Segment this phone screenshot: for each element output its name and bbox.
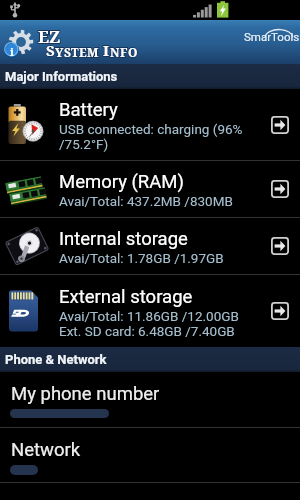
staticText: Phone & Network xyxy=(5,352,107,367)
button[interactable]: My phone number xyxy=(0,372,300,427)
staticText: EZ xyxy=(38,25,61,48)
button[interactable]: External storage xyxy=(0,275,300,347)
staticText: S xyxy=(46,40,55,60)
staticText: Internal storage xyxy=(59,228,188,250)
button[interactable]: Network xyxy=(0,428,300,482)
button[interactable]: Battery xyxy=(0,89,300,160)
staticText: Y xyxy=(55,44,64,60)
staticText: I xyxy=(103,40,110,60)
staticText: Avai/Total: 11.86GB /12.00GB Ext. SD car… xyxy=(59,308,239,339)
other: Open details xyxy=(271,116,289,134)
staticText: N xyxy=(110,44,120,60)
staticText: Y xyxy=(55,44,64,60)
staticText: EZ xyxy=(38,25,61,48)
staticText: S xyxy=(46,40,55,60)
staticText: O xyxy=(128,44,138,60)
staticText: E xyxy=(79,44,87,60)
staticText: S xyxy=(64,44,71,60)
staticText: Network xyxy=(11,439,81,461)
staticText: External storage xyxy=(59,286,193,308)
other: Open details xyxy=(271,180,289,198)
button[interactable]: Internal storage xyxy=(0,218,300,274)
staticText: N xyxy=(110,44,120,60)
staticText: M xyxy=(87,44,99,60)
staticText: My phone number xyxy=(11,383,160,405)
staticText: USB connected: charging (96% /75.2°F) xyxy=(59,121,243,152)
staticText: M xyxy=(87,44,99,60)
staticText: S xyxy=(64,44,71,60)
staticText: T xyxy=(71,44,79,60)
button[interactable]: Memory (RAM) xyxy=(0,161,300,217)
staticText: F xyxy=(120,44,128,60)
staticText: I xyxy=(103,40,110,60)
button[interactable]: i xyxy=(0,20,300,64)
staticText: Major Informations xyxy=(5,69,118,84)
staticText: E xyxy=(79,44,87,60)
staticText: i xyxy=(10,44,14,59)
other: Open details xyxy=(271,237,289,255)
staticText: O xyxy=(128,44,138,60)
staticText: F xyxy=(120,44,128,60)
staticText: Battery xyxy=(59,99,118,121)
staticText: T xyxy=(71,44,79,60)
staticText: Avai/Total: 1.78GB /1.97GB xyxy=(59,250,224,266)
staticText: SmarTools xyxy=(244,30,300,43)
staticText: Memory (RAM) xyxy=(59,171,184,193)
other: Open details xyxy=(271,302,289,320)
staticText: Avai/Total: 437.2MB /830MB xyxy=(59,193,233,209)
